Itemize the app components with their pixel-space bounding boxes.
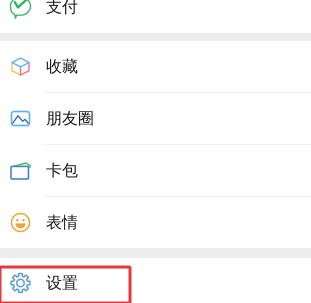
staticText: 收藏 bbox=[46, 57, 78, 76]
button[interactable]: 朋友圈 bbox=[0, 93, 311, 145]
staticText: 设置 bbox=[46, 273, 78, 293]
button[interactable]: 设置 bbox=[0, 258, 311, 303]
button[interactable]: 表情 bbox=[0, 197, 311, 248]
staticText: 卡包 bbox=[46, 161, 78, 180]
staticText: 表情 bbox=[46, 213, 78, 232]
staticText: 支付 bbox=[46, 0, 78, 17]
button[interactable]: 卡包 bbox=[0, 145, 311, 197]
button[interactable]: 收藏 bbox=[0, 41, 311, 93]
button[interactable]: 支付 bbox=[0, 0, 311, 33]
staticText: 朋友圈 bbox=[46, 109, 94, 128]
